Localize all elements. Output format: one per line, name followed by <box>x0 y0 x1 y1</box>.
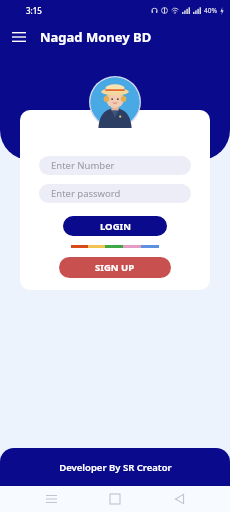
button[interactable]: Open navigation menu <box>8 26 30 48</box>
button[interactable]: Enter password <box>39 184 191 203</box>
staticText: SIGN UP <box>95 261 135 274</box>
button[interactable]: LOGIN <box>63 216 167 236</box>
staticText: Enter password <box>51 187 121 200</box>
button[interactable]: Developer By SR Creator <box>0 448 230 486</box>
button[interactable]: Recent apps <box>38 486 64 512</box>
staticText: Enter Number <box>51 159 115 172</box>
staticText: Nagad Money BD <box>40 28 152 46</box>
button[interactable]: Back <box>166 486 192 512</box>
button[interactable]: Home <box>102 486 128 512</box>
staticText: Developer By SR Creator <box>59 461 172 474</box>
staticText: LOGIN <box>100 220 131 233</box>
button[interactable]: Enter Number <box>39 156 191 175</box>
button[interactable]: SIGN UP <box>59 257 171 278</box>
staticText: 3:15 <box>26 5 42 16</box>
staticText: 40% <box>204 6 217 15</box>
